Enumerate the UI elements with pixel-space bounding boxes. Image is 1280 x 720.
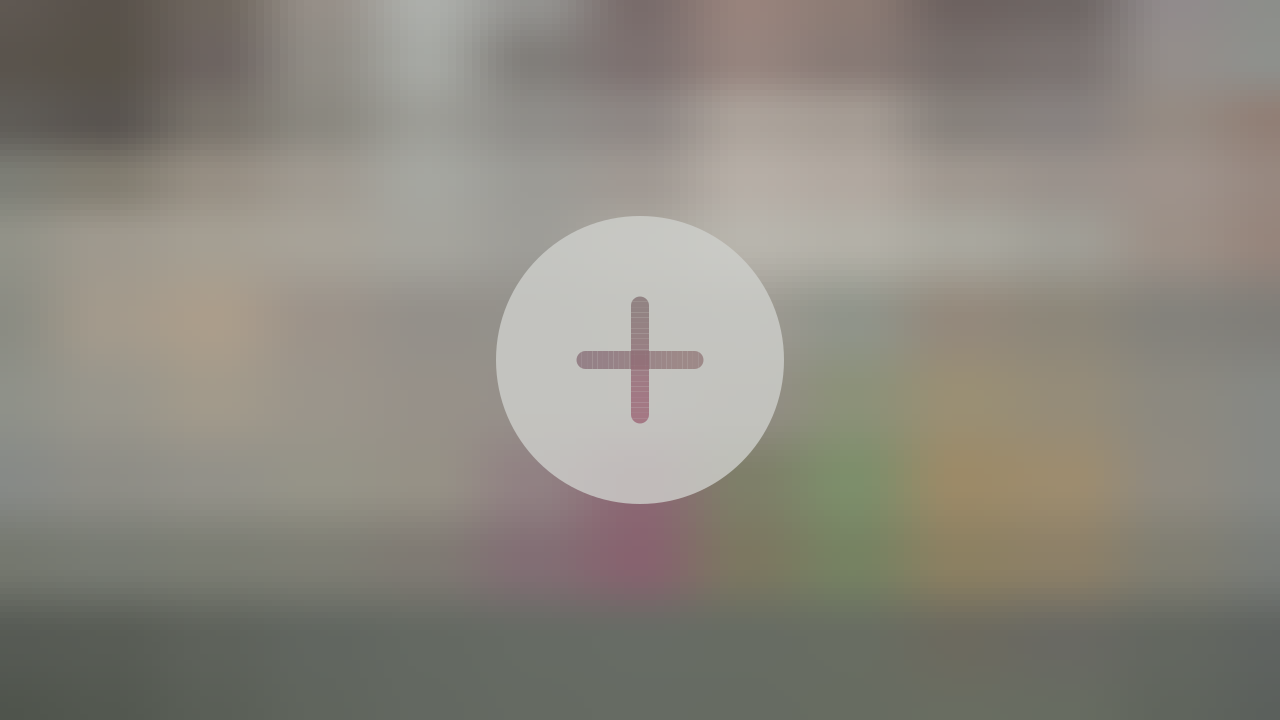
button[interactable]: Add photo [496,216,784,504]
